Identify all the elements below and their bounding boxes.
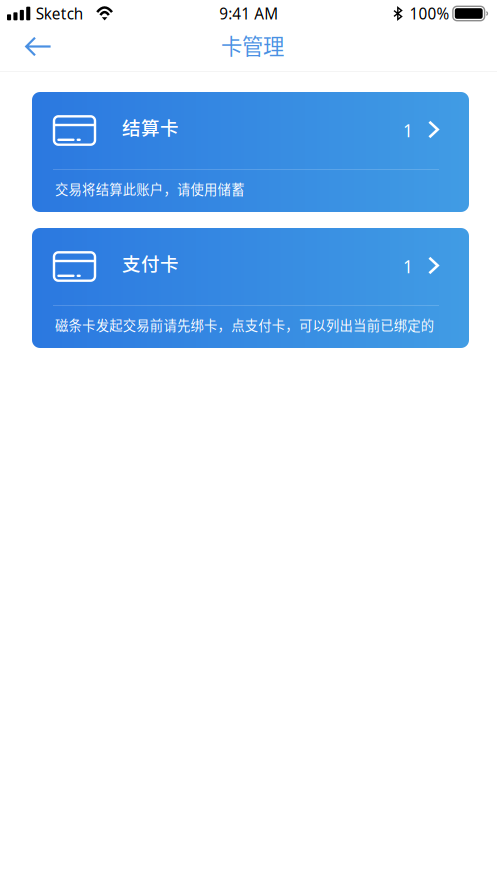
button[interactable]: Back xyxy=(0,28,70,69)
staticText: 9:41 AM xyxy=(219,3,278,24)
button[interactable]: 支付卡 xyxy=(32,228,469,348)
staticText: 100% xyxy=(409,3,449,24)
staticText: 交易将结算此账户，请使用储蓄 xyxy=(55,179,244,198)
staticText: 磁条卡发起交易前请先绑卡，点支付卡，可以列出当前已绑定的 xyxy=(55,315,434,334)
button[interactable]: 结算卡 xyxy=(32,92,469,212)
staticText: Sketch xyxy=(36,3,83,24)
staticText: 结算卡 xyxy=(122,114,179,140)
staticText: 1 xyxy=(403,255,413,278)
staticText: 1 xyxy=(403,119,413,142)
staticText: 支付卡 xyxy=(122,250,179,276)
staticText: 卡管理 xyxy=(221,29,284,60)
